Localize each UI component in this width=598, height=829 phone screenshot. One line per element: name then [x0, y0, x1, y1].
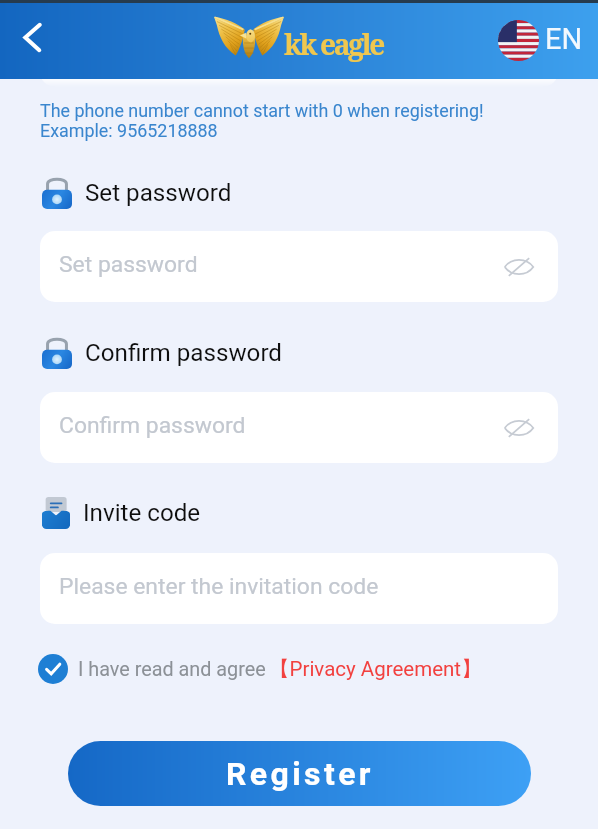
staticText: I have read and agree	[78, 658, 266, 681]
staticText: Register	[226, 755, 374, 793]
button[interactable]: EN	[498, 19, 583, 61]
staticText: kk eagle	[284, 25, 383, 63]
button[interactable]: Agree to terms	[38, 654, 68, 684]
staticText: Set password	[59, 251, 198, 278]
button[interactable]: Please enter the invitation code	[40, 553, 558, 624]
button[interactable]: Set password	[40, 231, 558, 302]
button[interactable]: Show password	[502, 250, 536, 284]
button[interactable]: Show password	[502, 411, 536, 445]
staticText: Invite code	[83, 499, 201, 527]
button[interactable]: Confirm password	[40, 392, 558, 463]
staticText: Confirm password	[85, 339, 282, 367]
staticText: Confirm password	[59, 412, 246, 439]
staticText: The phone number cannot start with 0 whe…	[40, 100, 484, 141]
staticText: Please enter the invitation code	[59, 573, 379, 600]
button[interactable]: 【Privacy Agreement】	[269, 656, 482, 682]
staticText: EN	[545, 22, 583, 56]
button[interactable]: Back	[10, 15, 55, 60]
staticText: Set password	[85, 179, 232, 207]
button[interactable]: Register	[68, 741, 531, 806]
